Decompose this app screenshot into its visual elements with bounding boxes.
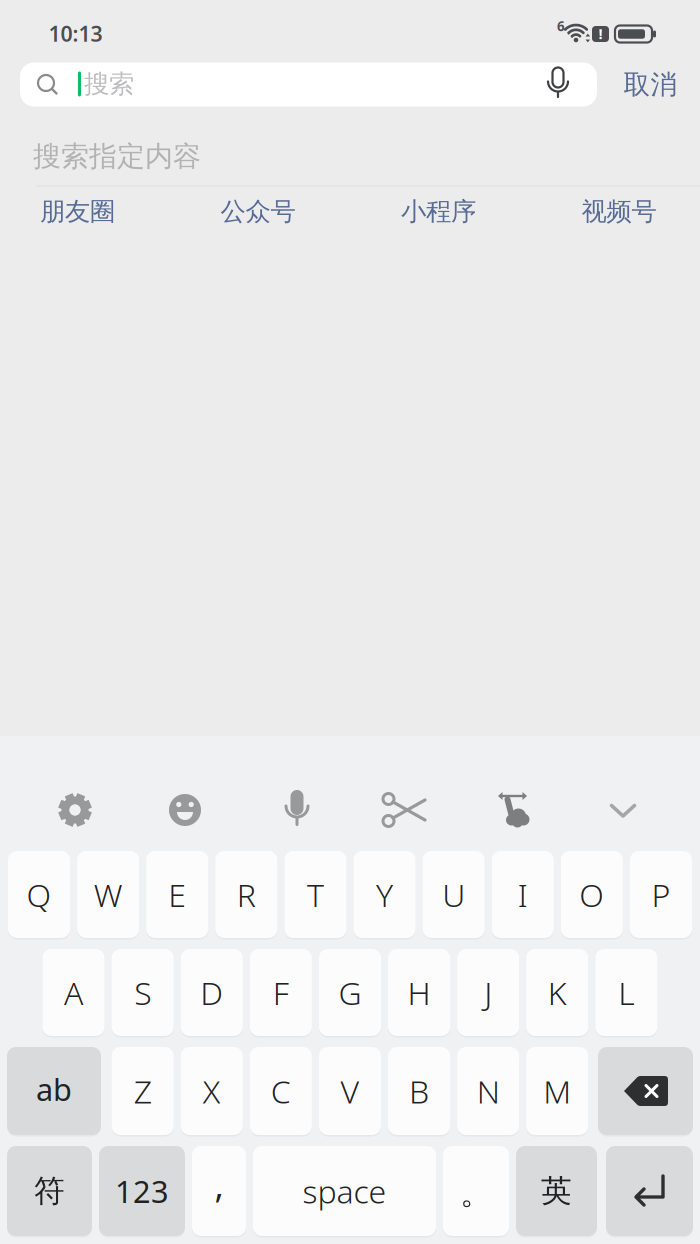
staticText: V [340, 1070, 359, 1112]
staticText: 10:13 [48, 19, 102, 48]
staticText: F [273, 971, 289, 1014]
button[interactable]: R [215, 851, 277, 938]
button[interactable]: A [42, 949, 105, 1036]
staticText: N [477, 1070, 500, 1112]
staticText: L [618, 971, 634, 1014]
button[interactable]: ab [7, 1047, 101, 1135]
button[interactable]: 取消 [605, 62, 695, 106]
staticText: Z [134, 1070, 152, 1112]
button[interactable]: H [388, 949, 450, 1036]
staticText: 取消 [623, 68, 677, 101]
button[interactable]: D [181, 949, 243, 1036]
staticText: , [214, 1162, 223, 1208]
button[interactable]: Z [112, 1047, 174, 1135]
button[interactable]: Dictation [273, 786, 321, 834]
staticText: W [94, 873, 123, 916]
staticText: 搜索指定内容 [33, 139, 201, 174]
button[interactable]: L [595, 949, 657, 1036]
button[interactable]: 公众号 [220, 191, 295, 231]
staticText: R [237, 873, 256, 916]
staticText: S [134, 971, 151, 1014]
staticText: Q [26, 873, 51, 916]
button[interactable]: U [423, 851, 485, 938]
staticText: 符 [34, 1172, 65, 1210]
button[interactable]: I [492, 851, 554, 938]
button[interactable]: M [526, 1047, 588, 1135]
button[interactable]: P [630, 851, 692, 938]
button[interactable]: 小程序 [401, 191, 476, 231]
button[interactable]: 123 [99, 1146, 185, 1236]
button[interactable]: 英 [516, 1146, 597, 1236]
button[interactable]: Y [353, 851, 416, 938]
staticText: 朋友圈 [40, 196, 115, 227]
button[interactable]: G [319, 949, 381, 1036]
staticText: O [579, 873, 604, 916]
button[interactable]: Clipboard [380, 786, 428, 834]
staticText: C [271, 1070, 291, 1112]
staticText: M [543, 1070, 571, 1112]
button[interactable]: Delete [598, 1047, 693, 1135]
staticText: 英 [541, 1172, 572, 1210]
button[interactable]: , [192, 1146, 246, 1236]
staticText: 小程序 [401, 196, 476, 227]
staticText: B [409, 1070, 429, 1112]
staticText: ab [36, 1069, 72, 1109]
button[interactable]: T [284, 851, 346, 938]
staticText: 公众号 [220, 196, 295, 227]
button[interactable]: X [181, 1047, 243, 1135]
staticText: 视频号 [581, 196, 656, 227]
button[interactable]: W [77, 851, 139, 938]
button[interactable]: N [457, 1047, 519, 1135]
staticText: ! [598, 24, 602, 43]
button[interactable]: Hide keyboard [599, 786, 647, 834]
button[interactable]: F [250, 949, 312, 1036]
staticText: space [302, 1170, 386, 1212]
button[interactable]: O [561, 851, 623, 938]
button[interactable]: S [112, 949, 174, 1036]
staticText: Y [376, 873, 393, 916]
button[interactable]: C [250, 1047, 312, 1135]
staticText: 搜索 [84, 68, 134, 99]
staticText: X [203, 1070, 221, 1112]
button[interactable]: Touch gestures [493, 786, 541, 834]
staticText: T [307, 873, 324, 916]
staticText: D [200, 971, 223, 1014]
button[interactable]: Return [606, 1146, 693, 1236]
button[interactable]: space [253, 1146, 436, 1236]
staticText: K [548, 971, 567, 1014]
staticText: P [651, 873, 670, 916]
staticText: 。 [460, 1173, 492, 1213]
staticText: U [442, 873, 465, 916]
button[interactable]: Voice input [536, 62, 580, 106]
button[interactable]: 视频号 [581, 191, 656, 231]
button[interactable]: J [457, 949, 519, 1036]
button[interactable]: Keyboard settings [51, 786, 99, 834]
staticText: G [338, 971, 361, 1014]
staticText: 6 [557, 17, 565, 35]
button[interactable]: Q [8, 851, 70, 938]
staticText: A [64, 971, 83, 1014]
button[interactable]: B [388, 1047, 450, 1135]
button[interactable]: 搜索 [20, 62, 597, 106]
staticText: 123 [115, 1171, 169, 1211]
button[interactable]: 朋友圈 [40, 191, 115, 231]
staticText: J [484, 971, 492, 1014]
button[interactable]: 。 [443, 1146, 509, 1236]
button[interactable]: 符 [7, 1146, 92, 1236]
staticText: E [168, 873, 186, 916]
button[interactable]: K [526, 949, 588, 1036]
button[interactable]: Emoji [161, 786, 209, 834]
staticText: H [408, 971, 431, 1014]
button[interactable]: E [146, 851, 208, 938]
staticText: I [518, 873, 528, 916]
button[interactable]: V [319, 1047, 381, 1135]
